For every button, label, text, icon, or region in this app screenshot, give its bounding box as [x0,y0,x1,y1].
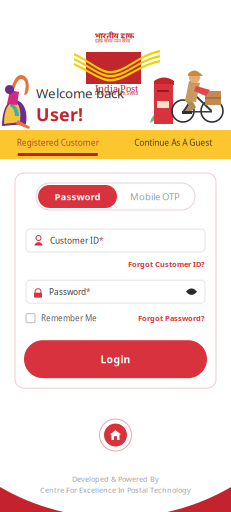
button[interactable]: Registered Customer [0,130,115,159]
button[interactable]: Login [24,340,207,378]
button[interactable]: Password [38,185,117,208]
staticText: Customer ID [50,235,99,246]
staticText: डाक सेवा-जन सेवा [95,37,130,44]
button[interactable]: Forgot Password? [138,311,205,325]
button[interactable]: Continue As A Guest [115,130,231,159]
staticText: * [99,235,104,246]
staticText: Developed & Powered By [72,474,159,484]
staticText: Dak Sewa Jan Sewa [94,90,138,96]
staticText: Continue As A Guest [134,137,212,148]
staticText: Remember Me [41,313,97,324]
staticText: India Post [95,82,138,95]
staticText: Password [54,190,100,203]
staticText: भारतीय डाक [94,30,134,41]
button[interactable]: Forgot Customer ID? [15,252,216,269]
staticText: Password [49,286,86,297]
button[interactable]: Home [98,418,132,452]
staticText: * [86,286,91,297]
staticText: User! [36,102,83,126]
staticText: Registered Customer [17,137,99,148]
staticText: Mobile OTP [130,190,180,203]
button[interactable]: Show password [186,288,197,296]
button[interactable]: Remember Me [26,311,97,325]
button[interactable]: Mobile OTP [117,185,193,208]
staticText: Forgot Customer ID? [128,259,205,269]
staticText: Forgot Password? [138,313,205,323]
staticText: Welcome back [36,84,124,102]
staticText: Login [100,352,130,366]
staticText: Centre For Excellence In Postal Technolo… [40,485,191,495]
